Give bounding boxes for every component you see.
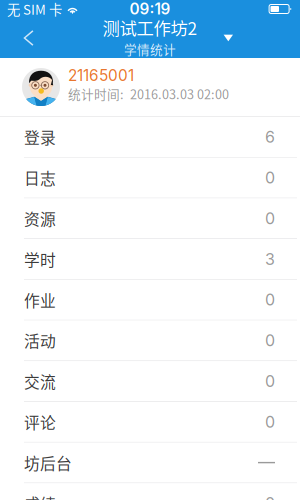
- staticText: 测试工作坊2: [102, 15, 197, 40]
- staticText: 交流: [24, 370, 56, 393]
- staticText: 6: [265, 127, 275, 147]
- button[interactable]: 学时: [0, 239, 300, 280]
- button[interactable]: 作业: [0, 280, 300, 320]
- staticText: 登录: [24, 126, 56, 148]
- button[interactable]: Switch workshop: [224, 18, 300, 58]
- staticText: 0: [265, 290, 275, 309]
- staticText: 作业: [24, 288, 56, 311]
- staticText: 09:19: [129, 0, 170, 18]
- staticText: 0: [265, 331, 275, 350]
- staticText: 评论: [24, 410, 56, 433]
- staticText: 0: [265, 209, 275, 228]
- staticText: 0: [265, 494, 275, 500]
- staticText: 成绩: [24, 492, 56, 500]
- button[interactable]: 交流: [0, 361, 300, 402]
- staticText: 0: [265, 371, 275, 391]
- staticText: 资源: [24, 207, 56, 230]
- staticText: 21165001: [68, 66, 134, 85]
- staticText: 统计时间: 2016.03.03 02:00: [68, 85, 229, 103]
- staticText: 日志: [24, 166, 56, 189]
- staticText: 0: [265, 412, 275, 432]
- button[interactable]: 登录: [0, 117, 300, 158]
- button[interactable]: 成绩: [0, 483, 300, 500]
- staticText: 学时: [24, 248, 56, 270]
- button[interactable]: Back: [0, 18, 47, 58]
- button[interactable]: 坊后台: [0, 443, 300, 483]
- button[interactable]: 评论: [0, 402, 300, 443]
- button[interactable]: 日志: [0, 158, 300, 198]
- button[interactable]: 活动: [0, 320, 300, 361]
- staticText: 3: [265, 249, 275, 269]
- staticText: 坊后台: [24, 451, 72, 474]
- staticText: 0: [265, 168, 275, 187]
- staticText: 无 SIM 卡: [7, 0, 62, 19]
- staticText: 学情统计: [124, 40, 176, 58]
- button[interactable]: 资源: [0, 198, 300, 239]
- staticText: 活动: [24, 329, 56, 352]
